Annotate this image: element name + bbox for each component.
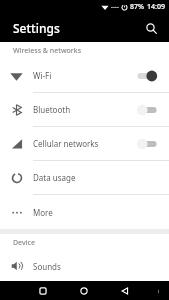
button[interactable]: On <box>135 67 159 85</box>
button[interactable]: Menu <box>151 284 165 298</box>
staticText: Sounds <box>33 261 169 272</box>
button[interactable]: Sounds <box>0 251 169 281</box>
button[interactable]: Home <box>71 281 97 300</box>
button[interactable]: Off <box>135 101 159 119</box>
staticText: More <box>33 207 169 218</box>
staticText: Wireless & networks <box>13 46 82 56</box>
button[interactable]: Back <box>112 281 138 300</box>
button[interactable]: Search <box>139 16 163 40</box>
button[interactable]: Cellular networks <box>0 127 169 160</box>
staticText: Bluetooth <box>33 104 135 115</box>
button[interactable]: Data usage <box>0 161 169 194</box>
staticText: 87% <box>130 2 144 12</box>
button[interactable]: More <box>0 195 169 229</box>
staticText: Device <box>13 238 36 248</box>
staticText: Data usage <box>33 172 169 183</box>
staticText: Settings <box>13 20 60 36</box>
staticText: Wi-Fi <box>33 70 135 81</box>
button[interactable]: Bluetooth <box>0 93 169 126</box>
button[interactable]: Recents <box>30 281 56 300</box>
button[interactable]: Off <box>135 135 159 153</box>
staticText: Cellular networks <box>33 138 135 149</box>
button[interactable]: Wi-Fi <box>0 59 169 92</box>
staticText: 14:09 <box>147 2 165 12</box>
